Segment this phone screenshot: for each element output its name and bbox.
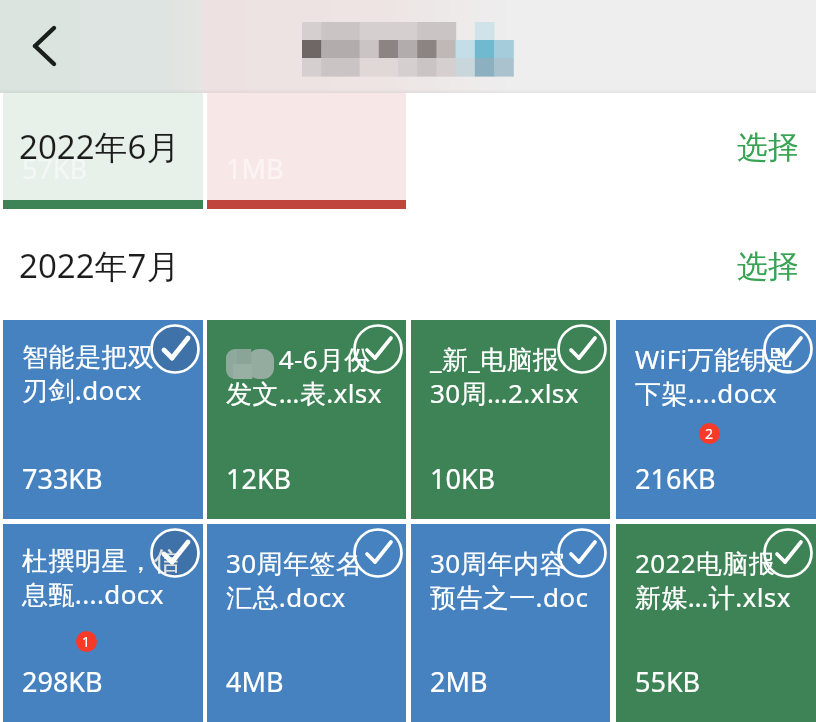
button[interactable]: 杜撰明星，信 息甄....docx xyxy=(3,524,203,722)
button[interactable]: _新_电脑报 30周…2.xlsx xyxy=(411,320,610,519)
staticText: 2022年6月 xyxy=(19,124,180,169)
staticText: 智能是把双 刃剑.docx xyxy=(22,341,154,408)
staticText: 1MB xyxy=(226,150,284,187)
staticText: 57KB xyxy=(22,150,88,187)
button[interactable]: 4-6月份 发文…表.xlsx xyxy=(207,320,406,519)
button[interactable]: 2022电脑报 新媒…计.xlsx xyxy=(616,524,816,722)
staticText: 2MB xyxy=(430,663,488,700)
staticText: 4-6月份 发文…表.xlsx xyxy=(226,341,382,411)
staticText: 杜撰明星，信 息甄....docx xyxy=(22,545,181,612)
button[interactable]: 30周年签名 汇总.docx xyxy=(207,524,406,722)
staticText: 30周年签名 汇总.docx xyxy=(226,545,363,615)
button[interactable]: WiFi万能钥匙 下架....docx xyxy=(616,320,816,519)
staticText: 1 xyxy=(82,632,91,651)
staticText: _新_电脑报 30周…2.xlsx xyxy=(430,341,579,411)
staticText: 2 xyxy=(705,424,714,443)
staticText: 4MB xyxy=(226,663,284,700)
button[interactable]: 智能是把双 刃剑.docx xyxy=(3,320,203,519)
staticText: 10KB xyxy=(430,460,496,497)
button[interactable]: 30周年内容 预告之一.doc xyxy=(411,524,610,722)
staticText: 30周年内容 预告之一.doc xyxy=(430,545,589,615)
staticText: WiFi万能钥匙 下架....docx xyxy=(635,341,794,411)
staticText: 733KB xyxy=(22,460,103,497)
staticText: 选择 xyxy=(737,128,799,167)
staticText: 2022年7月 xyxy=(19,243,180,288)
button[interactable]: Back xyxy=(13,14,77,78)
button[interactable]: 选择 xyxy=(737,247,799,286)
staticText: 12KB xyxy=(226,460,292,497)
staticText: 298KB xyxy=(22,663,103,700)
staticText: 216KB xyxy=(635,460,716,497)
staticText: 选择 xyxy=(737,247,799,286)
button[interactable]: 选择 xyxy=(737,128,799,167)
staticText: 55KB xyxy=(635,663,701,700)
staticText: 2022电脑报 新媒…计.xlsx xyxy=(635,545,791,615)
